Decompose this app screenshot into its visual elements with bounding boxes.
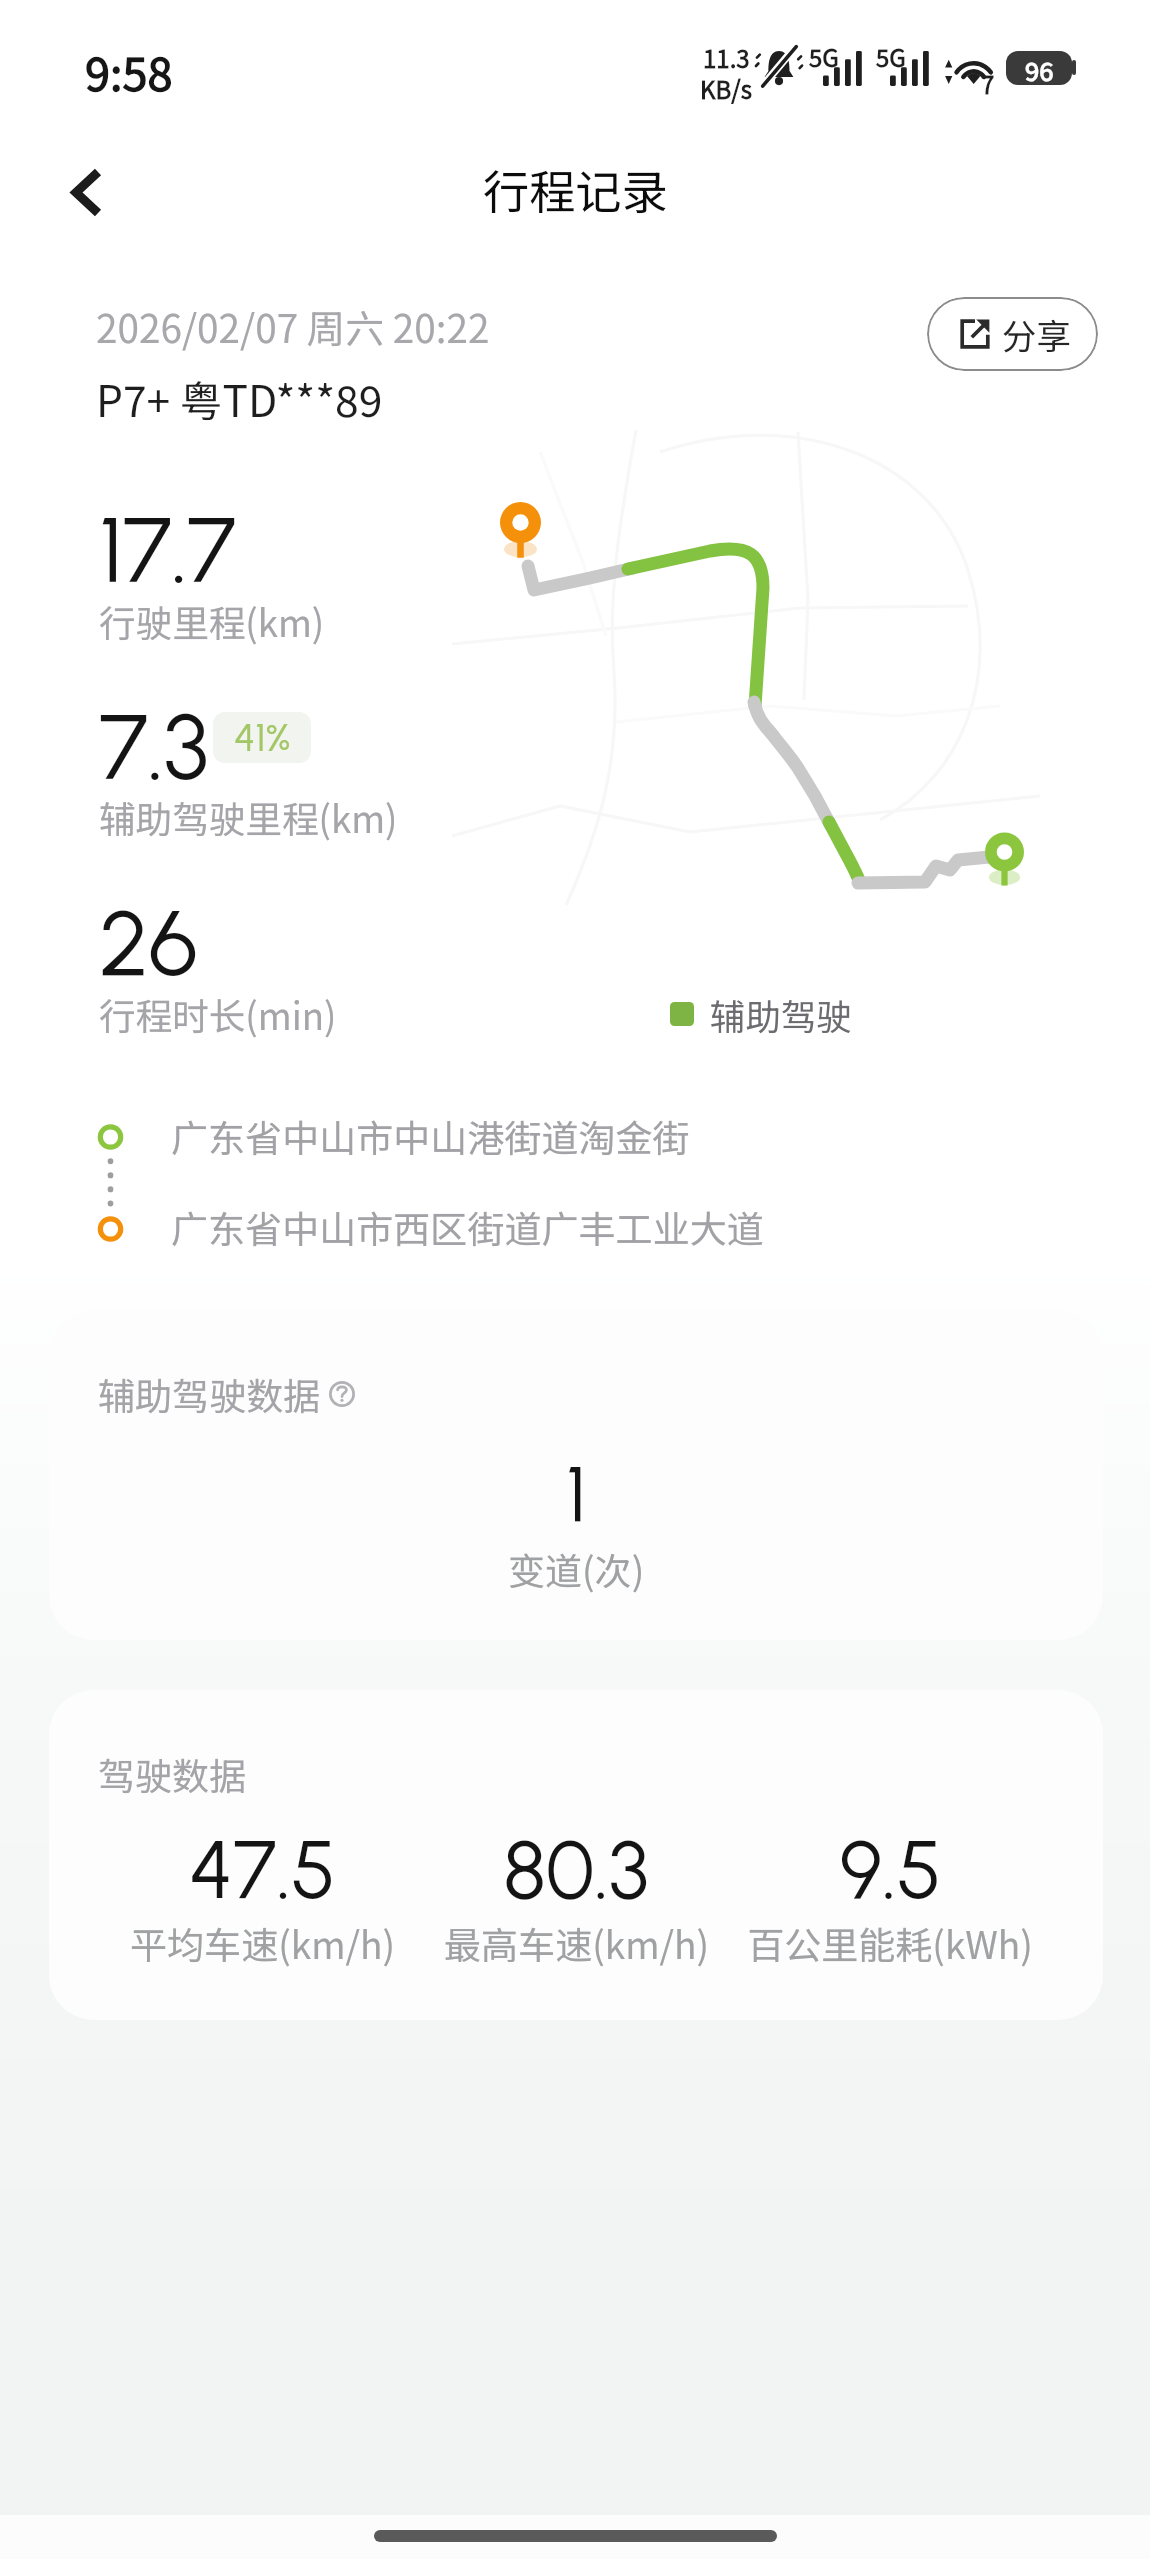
staticText: 9.5 [839,1821,942,1918]
staticText: 平均车速(km/h) [130,1916,395,1970]
staticText: 26 [99,888,198,998]
staticText: 11.3 [703,40,750,75]
staticText: 41% [234,714,291,761]
staticText: 驾驶数据 [98,1747,247,1801]
staticText: 广东省中山市中山港街道淘金街 [171,1109,690,1163]
staticText: 1 [566,1447,587,1541]
staticText: 96 [1025,51,1054,85]
button[interactable]: About assisted-driving data [329,1381,355,1407]
staticText: 最高车速(km/h) [444,1916,709,1970]
staticText: 分享 [1002,309,1071,359]
staticText: P7+ 粤TD***89 [96,368,383,430]
staticText: 行程时长(min) [99,988,337,1041]
staticText: 5G [876,39,906,74]
staticText: 17.7 [99,495,236,605]
staticText: 7.3 [99,692,208,802]
staticText: KB/s [700,71,752,106]
staticText: 7 [981,66,995,101]
staticText: 80.3 [503,1821,649,1918]
staticText: 广东省中山市西区街道广丰工业大道 [171,1200,764,1254]
staticText: 47.5 [189,1821,336,1918]
staticText: 百公里能耗(kWh) [747,1916,1033,1970]
staticText: 5G [809,39,839,74]
staticText: 变道(次) [508,1542,645,1596]
staticText: 行驶里程(km) [99,595,325,648]
staticText: 9:58 [85,39,173,104]
staticText: 2026/02/07 周六 20:22 [96,298,490,354]
button[interactable]: Back [6,111,141,264]
staticText: 辅助驾驶数据 [98,1367,321,1421]
staticText: 辅助驾驶里程(km) [99,791,398,844]
staticText: 辅助驾驶 [710,989,852,1040]
button[interactable]: 分享 [927,297,1098,371]
staticText: 行程记录 [483,155,668,222]
